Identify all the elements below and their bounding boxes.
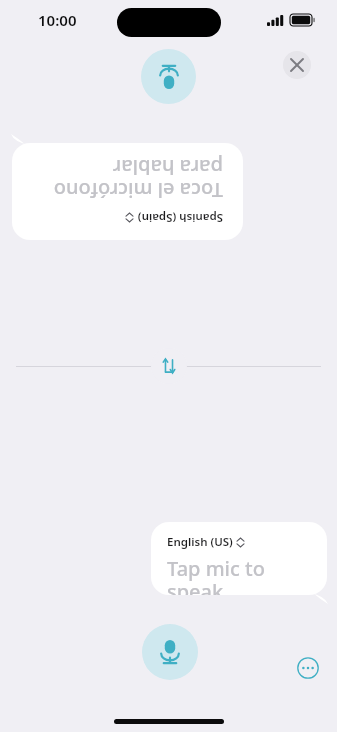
staticText: English (US) xyxy=(167,534,233,550)
staticText: Toca el micrófono para hablar xyxy=(32,155,223,204)
button[interactable]: Close xyxy=(283,51,311,79)
button[interactable]: Swap languages xyxy=(151,348,187,384)
staticText: 10:00 xyxy=(38,10,77,30)
button[interactable]: Tap mic to speak xyxy=(142,624,198,680)
button[interactable]: Spanish microphone xyxy=(141,49,196,104)
staticText: Tap mic to speak xyxy=(167,555,311,595)
button[interactable]: Spanish (Spain) xyxy=(12,134,243,240)
button[interactable]: English (US) xyxy=(151,522,327,604)
staticText: Spanish (Spain) xyxy=(137,210,223,226)
button[interactable]: More options xyxy=(297,657,319,679)
